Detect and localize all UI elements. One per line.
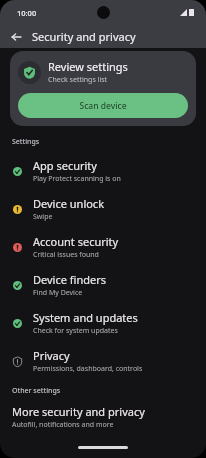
button[interactable]: More security and privacy bbox=[0, 402, 206, 432]
button[interactable]: Back bbox=[7, 28, 25, 46]
staticText: Find My Device bbox=[33, 288, 83, 298]
staticText: Critical issues found bbox=[33, 250, 99, 260]
staticText: App security bbox=[33, 158, 97, 173]
staticText: Check for system updates bbox=[33, 326, 118, 336]
staticText: Other settings bbox=[12, 386, 61, 396]
staticText: Settings bbox=[12, 137, 40, 147]
staticText: Account security bbox=[33, 234, 119, 249]
staticText: More security and privacy bbox=[12, 404, 145, 419]
button[interactable]: Scan device bbox=[18, 93, 188, 118]
button[interactable]: Device unlock bbox=[0, 190, 206, 228]
staticText: Check settings list bbox=[48, 75, 108, 85]
staticText: 10:00 bbox=[17, 8, 37, 18]
button[interactable]: Review settings bbox=[10, 51, 196, 126]
staticText: Review settings bbox=[48, 59, 128, 74]
staticText: System and updates bbox=[33, 310, 138, 325]
staticText: Device finders bbox=[33, 272, 106, 287]
staticText: Scan device bbox=[79, 100, 127, 112]
staticText: Privacy bbox=[33, 348, 70, 363]
button[interactable]: App security bbox=[0, 152, 206, 190]
staticText: Permissions, dashboard, controls bbox=[33, 364, 143, 374]
button[interactable]: Account security bbox=[0, 228, 206, 266]
staticText: Autofill, notifications and more bbox=[12, 420, 114, 430]
button[interactable]: Device finders bbox=[0, 266, 206, 304]
button[interactable]: Privacy bbox=[0, 342, 206, 380]
staticText: Device unlock bbox=[33, 196, 105, 211]
button[interactable]: System and updates bbox=[0, 304, 206, 342]
staticText: Security and privacy bbox=[32, 29, 136, 44]
staticText: Play Protect scanning is on bbox=[33, 174, 121, 184]
staticText: Swipe bbox=[33, 212, 53, 222]
